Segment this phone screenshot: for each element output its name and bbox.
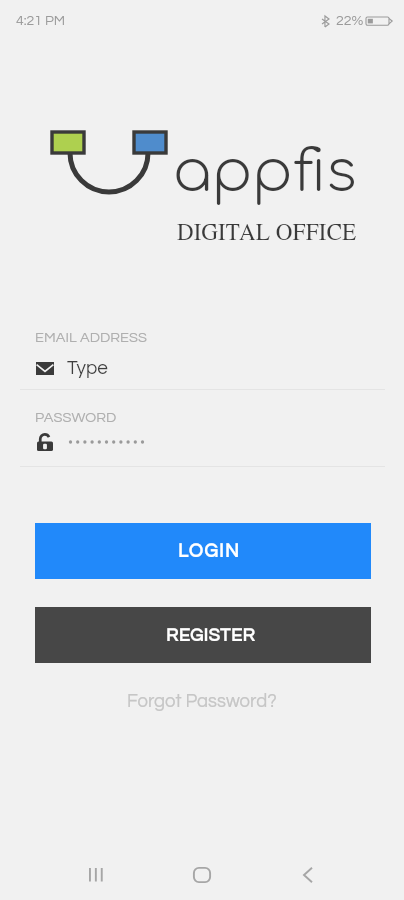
staticText: DIGITAL OFFICE <box>177 222 357 245</box>
button[interactable]: Back <box>274 853 342 897</box>
staticText: EMAIL ADDRESS <box>35 330 147 345</box>
staticText: PASSWORD <box>35 410 117 425</box>
button[interactable]: LOGIN <box>35 523 371 579</box>
staticText: LOGIN <box>178 542 241 561</box>
button[interactable]: Forgot Password? <box>117 688 287 715</box>
staticText: REGISTER <box>166 626 256 645</box>
button[interactable]: Email address field <box>0 352 404 384</box>
staticText: Type <box>67 358 108 378</box>
staticText: 22% <box>336 14 364 28</box>
button[interactable]: Password field <box>0 428 404 456</box>
staticText: 4:21 PM <box>16 14 65 28</box>
button[interactable]: Home <box>168 853 236 897</box>
button[interactable]: Recent apps <box>62 853 130 897</box>
staticText: appfis <box>173 141 357 205</box>
button[interactable]: REGISTER <box>35 607 371 663</box>
